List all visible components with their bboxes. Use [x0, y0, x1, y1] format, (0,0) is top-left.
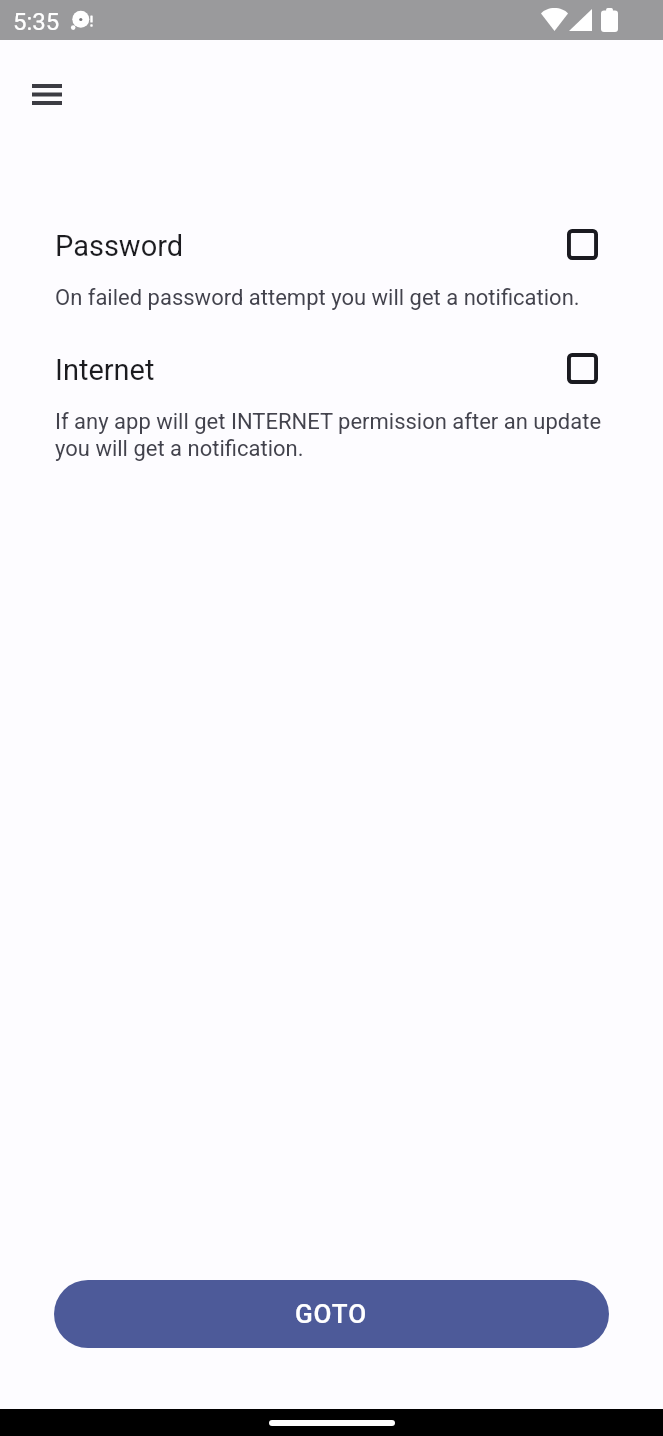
button[interactable]: Internet	[0, 353, 663, 462]
button[interactable]: Menu	[23, 70, 71, 118]
staticText: 5:35	[13, 8, 60, 36]
button[interactable]: Toggle Internet	[567, 353, 598, 384]
button[interactable]: Toggle Password	[567, 229, 598, 260]
staticText: GOTO	[295, 1299, 368, 1329]
button[interactable]: Password	[0, 229, 663, 311]
button[interactable]: GOTO	[54, 1280, 609, 1348]
staticText: Password	[55, 229, 184, 263]
staticText: On failed password attempt you will get …	[55, 285, 580, 311]
staticText: Internet	[55, 353, 155, 387]
staticText: If any app will get INTERNET permission …	[55, 409, 608, 462]
